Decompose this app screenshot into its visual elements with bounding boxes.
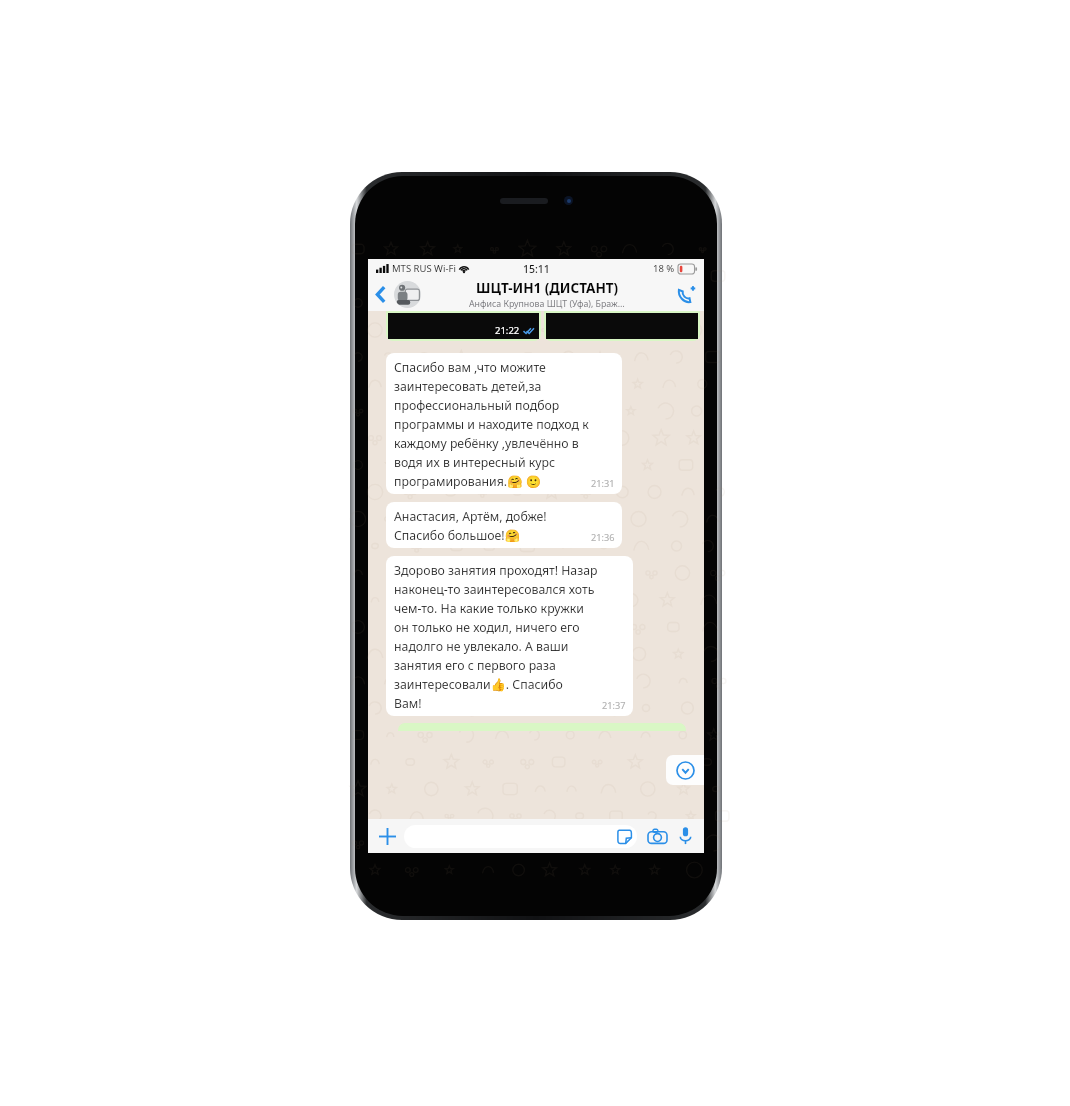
staticText: Анастасия, Артём, добже!: [394, 508, 547, 525]
staticText: Спасибо большое!🤗: [394, 527, 520, 544]
staticText: Здорово занятия проходят! Назар: [394, 562, 598, 579]
staticText: програмирования.🤗 🙂: [394, 473, 541, 490]
staticText: каждому ребёнку ,увлечённо в: [394, 435, 579, 452]
staticText: он только не ходил, ничего его: [394, 619, 580, 636]
staticText: ШЦТ-ИН1 (ДИСТАНТ): [476, 279, 619, 297]
button[interactable]: Здорово занятия проходят! Назар: [386, 556, 633, 716]
staticText: 15:11: [523, 262, 550, 276]
button[interactable]: Attach: [374, 823, 400, 849]
staticText: 21:37: [602, 699, 626, 712]
button[interactable]: ШЦТ-ИН1 (ДИСТАНТ): [426, 279, 668, 310]
staticText: Вам!: [394, 695, 422, 712]
button[interactable]: [404, 825, 637, 848]
button[interactable]: Scroll to bottom: [666, 755, 704, 785]
staticText: надолго не увлекало. А ваши: [394, 638, 569, 655]
button[interactable]: Voice message: [672, 823, 698, 849]
staticText: наконец-то заинтересовался хоть: [394, 581, 595, 598]
staticText: занятия его с первого раза: [394, 657, 556, 674]
staticText: 21:22: [495, 324, 520, 337]
button[interactable]: Camera: [644, 823, 670, 849]
button[interactable]: 21:22: [388, 313, 539, 339]
staticText: MTS RUS Wi-Fi: [392, 262, 456, 275]
button[interactable]: Back: [368, 278, 394, 311]
button[interactable]: Call: [668, 278, 704, 311]
staticText: чем-то. На какие только кружки: [394, 600, 584, 617]
staticText: Спасибо вам ,что можите: [394, 359, 546, 376]
staticText: программы и находите подход к: [394, 416, 589, 433]
staticText: 21:36: [591, 531, 615, 544]
staticText: 18 %: [653, 262, 675, 275]
staticText: 21:31: [591, 477, 615, 490]
button[interactable]: Спасибо вам ,что можите: [386, 353, 622, 494]
button[interactable]: Анастасия, Артём, добже!: [386, 502, 622, 548]
staticText: водя их в интересный курс: [394, 454, 556, 471]
staticText: заинтересовать детей,за: [394, 378, 542, 395]
staticText: профессиональный подбор: [394, 397, 560, 414]
staticText: Анфиса Крупнова ШЦТ (Уфа), Браж…: [469, 298, 625, 310]
staticText: заинтересовали👍. Спасибо: [394, 676, 563, 693]
